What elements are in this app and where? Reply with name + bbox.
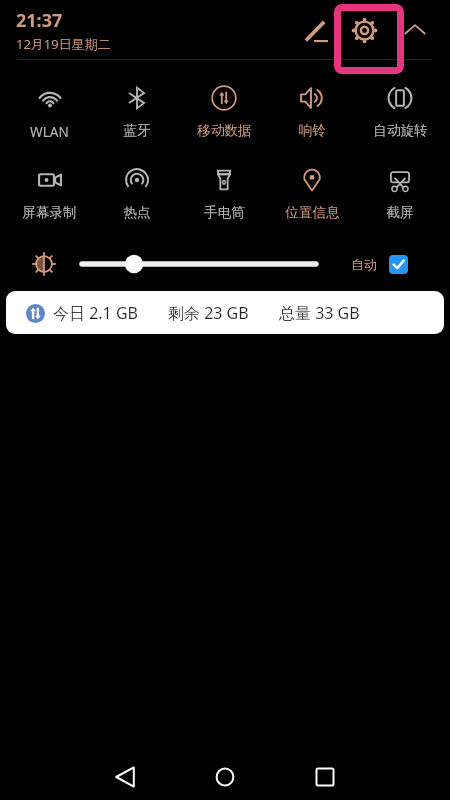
staticText: 位置信息 bbox=[285, 204, 340, 221]
staticText: 总量 33 GB bbox=[279, 302, 360, 324]
staticText: 蓝牙 bbox=[123, 122, 151, 139]
button[interactable]: 移动数据 bbox=[180, 85, 268, 141]
button[interactable]: 自动旋转 bbox=[356, 85, 444, 141]
button[interactable]: Recents bbox=[297, 744, 353, 800]
button[interactable]: Settings bbox=[342, 8, 386, 52]
staticText: 剩余 23 GB bbox=[168, 302, 249, 324]
button[interactable]: 屏幕录制 bbox=[6, 167, 93, 223]
button[interactable]: 响铃 bbox=[268, 85, 356, 141]
staticText: 响铃 bbox=[298, 122, 326, 139]
staticText: WLAN bbox=[30, 122, 69, 141]
button[interactable]: 位置信息 bbox=[268, 167, 356, 223]
button[interactable]: Home bbox=[197, 744, 253, 800]
staticText: 自动 bbox=[351, 256, 377, 272]
button[interactable]: 自动 bbox=[351, 252, 408, 276]
button[interactable]: Collapse bbox=[393, 8, 437, 52]
button[interactable]: WLAN bbox=[6, 85, 93, 141]
button[interactable]: 今日 2.1 GB bbox=[6, 291, 444, 334]
staticText: 截屏 bbox=[386, 204, 414, 221]
button[interactable]: 蓝牙 bbox=[93, 85, 180, 141]
staticText: 今日 2.1 GB bbox=[53, 302, 138, 324]
button[interactable]: Edit bbox=[294, 9, 338, 53]
staticText: 移动数据 bbox=[197, 122, 252, 139]
staticText: 屏幕录制 bbox=[22, 204, 77, 221]
staticText: 手电筒 bbox=[204, 204, 245, 221]
staticText: 12月19日星期二 bbox=[16, 35, 111, 53]
button[interactable]: 手电筒 bbox=[180, 167, 268, 223]
button[interactable]: 截屏 bbox=[356, 167, 444, 223]
staticText: 21:37 bbox=[16, 8, 63, 33]
staticText: 自动旋转 bbox=[373, 122, 428, 139]
staticText: 热点 bbox=[123, 204, 151, 221]
button[interactable]: Back bbox=[97, 744, 153, 800]
button[interactable]: 热点 bbox=[93, 167, 180, 223]
